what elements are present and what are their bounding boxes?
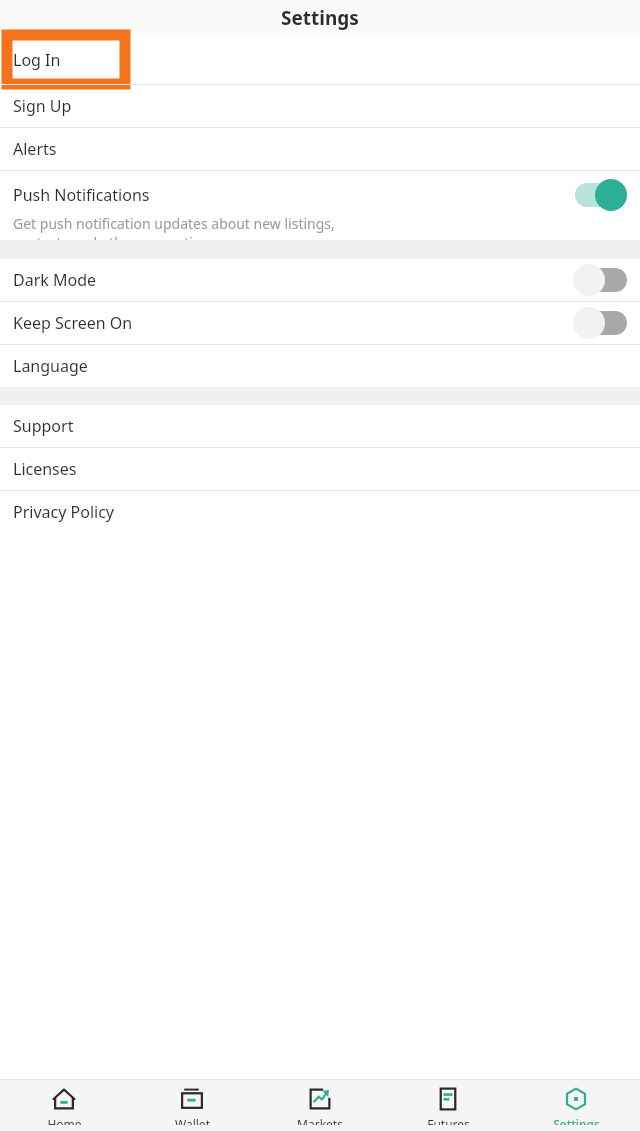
button[interactable]: Markets — [256, 1080, 384, 1131]
staticText: Privacy Policy — [13, 501, 114, 523]
button[interactable]: Language — [0, 345, 640, 387]
button[interactable]: Wallet — [128, 1080, 256, 1131]
button[interactable]: Alerts — [0, 128, 640, 170]
staticText: Markets — [297, 1116, 343, 1125]
staticText: Licenses — [13, 458, 77, 480]
staticText: Get push notification updates about new … — [13, 214, 335, 240]
staticText: Support — [13, 415, 74, 437]
staticText: Alerts — [13, 138, 57, 160]
button[interactable]: Keep Screen On — [0, 302, 640, 344]
button[interactable]: Dark Mode — [0, 259, 640, 301]
button[interactable]: Home — [0, 1080, 128, 1131]
staticText: Keep Screen On — [13, 312, 573, 334]
button[interactable]: Sign Up — [0, 85, 640, 127]
staticText: Settings — [281, 5, 359, 31]
staticText: Dark Mode — [13, 269, 573, 291]
button[interactable]: Log In — [0, 35, 640, 84]
staticText: Log In — [13, 49, 61, 71]
button[interactable]: Futures — [384, 1080, 512, 1131]
button[interactable]: Settings — [512, 1080, 640, 1131]
staticText: Push Notifications — [13, 184, 573, 206]
staticText: Language — [13, 355, 88, 377]
button[interactable]: Support — [0, 405, 640, 447]
staticText: Sign Up — [13, 95, 72, 117]
staticText: Wallet — [175, 1116, 210, 1125]
button[interactable]: Push Notifications — [0, 171, 640, 240]
button[interactable]: Privacy Policy — [0, 491, 640, 533]
staticText: Futures — [427, 1116, 470, 1125]
button[interactable]: Licenses — [0, 448, 640, 490]
staticText: Home — [47, 1116, 82, 1125]
staticText: Settings — [553, 1116, 600, 1125]
